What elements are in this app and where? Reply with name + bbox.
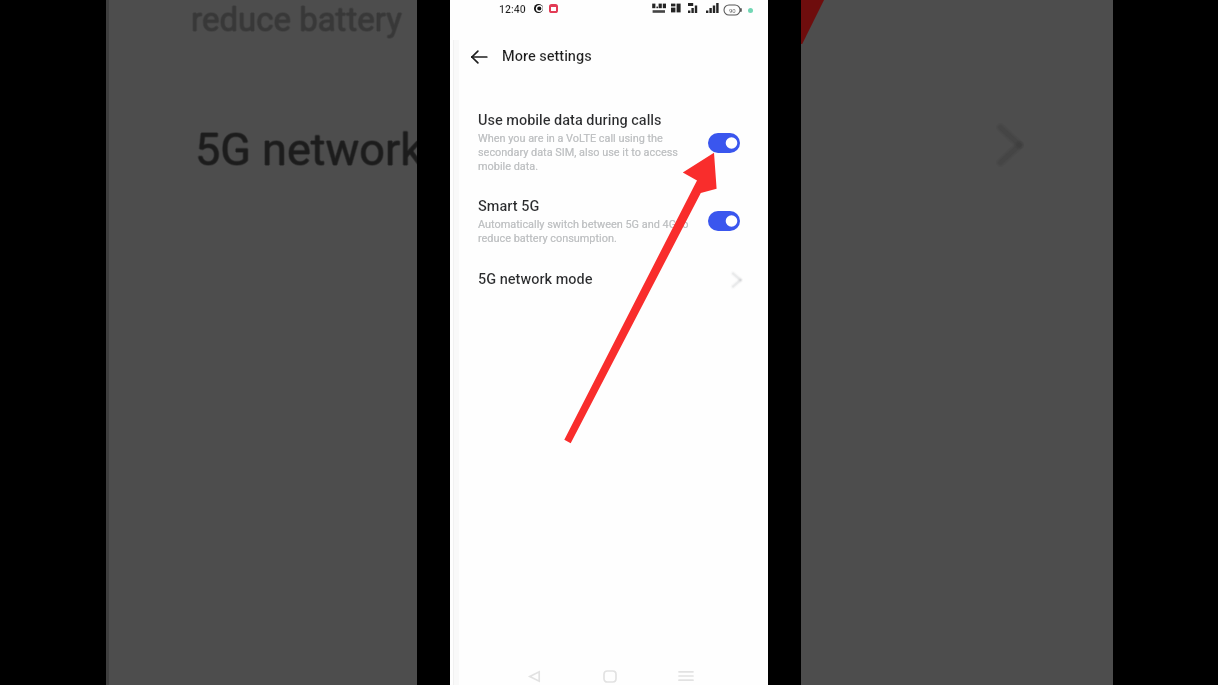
staticText: More settings [502,48,592,65]
staticText: 5G network mode [478,271,593,288]
button[interactable]: Home [591,659,629,685]
staticText: 5G network [194,123,423,176]
button[interactable]: 5G network mode [450,261,768,303]
staticText: Use mobile data during calls [478,112,662,129]
button[interactable]: Recent apps [667,659,705,685]
button[interactable]: Smart 5G [450,190,768,243]
staticText: Automatically switch between 5G and 4G t… [478,218,689,245]
staticText: 90 [729,7,736,14]
button[interactable]: Use mobile data during calls, on [708,133,740,153]
button[interactable]: Use mobile data during calls [450,103,768,170]
staticText: reduce battery [191,0,402,39]
staticText: 5G network [195,122,424,175]
staticText: 5G network [196,123,425,176]
staticText: reduce battery [190,0,401,39]
button[interactable]: Back [515,659,553,685]
staticText: Smart 5G [478,198,540,215]
staticText: reduce battery [192,0,403,39]
staticText: 12:40 [499,3,526,15]
staticText: When you are in a VoLTE call using the s… [478,132,678,173]
staticText: 5G network [195,123,424,176]
staticText: reduce battery [191,1,402,40]
button[interactable]: Smart 5G, on [708,211,740,231]
button[interactable]: Back [462,42,496,72]
staticText: reduce battery [191,0,402,38]
staticText: 5G network [195,124,424,177]
